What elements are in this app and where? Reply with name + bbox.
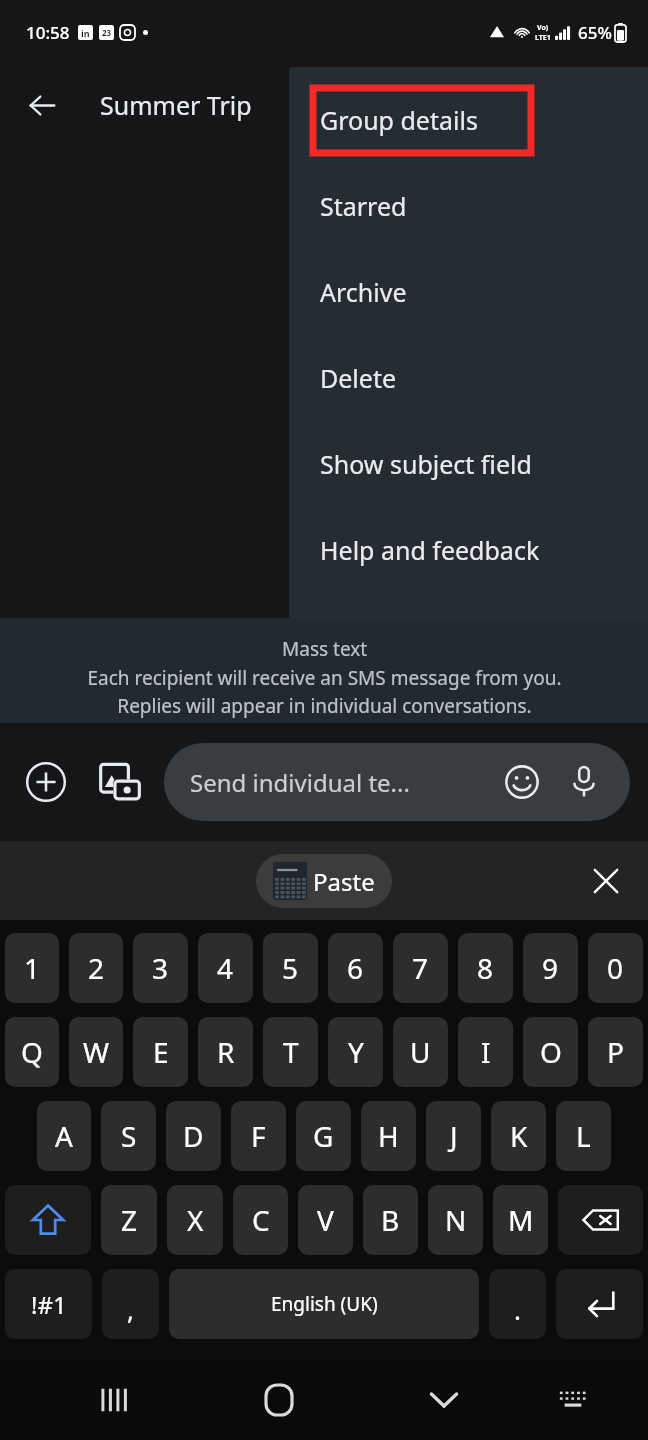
button[interactable]: R bbox=[198, 1017, 253, 1087]
button[interactable]: English (UK) bbox=[169, 1269, 479, 1339]
button[interactable]: Q bbox=[5, 1017, 59, 1087]
button[interactable]: W bbox=[69, 1017, 123, 1087]
button[interactable]: V bbox=[298, 1185, 353, 1255]
staticText: Paste bbox=[313, 865, 375, 898]
staticText: A bbox=[55, 1117, 73, 1155]
button[interactable]: 8 bbox=[458, 933, 513, 1003]
button[interactable]: O bbox=[523, 1017, 578, 1087]
button[interactable]: 1 bbox=[5, 933, 59, 1003]
button[interactable]: 6 bbox=[328, 933, 383, 1003]
staticText: V bbox=[317, 1201, 334, 1239]
staticText: . bbox=[514, 1292, 521, 1327]
staticText: E bbox=[153, 1033, 169, 1071]
button[interactable]: . bbox=[489, 1269, 546, 1339]
button[interactable]: F bbox=[231, 1101, 286, 1171]
staticText: Replies will appear in individual conver… bbox=[117, 693, 532, 719]
staticText: T bbox=[283, 1033, 299, 1071]
button[interactable]: I bbox=[458, 1017, 513, 1087]
button[interactable]: Delete bbox=[289, 335, 648, 421]
staticText: 65% bbox=[578, 21, 612, 44]
staticText: Delete bbox=[320, 361, 397, 395]
button[interactable]: Help and feedback bbox=[289, 507, 648, 593]
staticText: J bbox=[450, 1117, 458, 1155]
staticText: 6 bbox=[347, 949, 364, 987]
button[interactable]: Close suggestion bbox=[578, 853, 634, 909]
button[interactable]: Camera and gallery bbox=[92, 754, 148, 810]
staticText: Group details bbox=[320, 103, 478, 137]
button[interactable]: Archive bbox=[289, 249, 648, 335]
button[interactable]: Hide keyboard bbox=[413, 1369, 475, 1431]
button[interactable]: J bbox=[426, 1101, 481, 1171]
button[interactable]: Emoji bbox=[498, 758, 546, 806]
staticText: !#1 bbox=[31, 1288, 67, 1321]
button[interactable]: Recent apps bbox=[83, 1369, 145, 1431]
button[interactable]: Home bbox=[248, 1369, 310, 1431]
button[interactable]: Shift bbox=[5, 1185, 91, 1255]
staticText: Q bbox=[21, 1033, 43, 1071]
staticText: 7 bbox=[412, 949, 429, 987]
button[interactable]: C bbox=[233, 1185, 288, 1255]
button[interactable]: U bbox=[393, 1017, 448, 1087]
button[interactable]: T bbox=[263, 1017, 318, 1087]
button[interactable]: 7 bbox=[393, 933, 448, 1003]
button[interactable]: Send individual te... bbox=[164, 743, 630, 821]
button[interactable]: Z bbox=[101, 1185, 157, 1255]
staticText: 9 bbox=[542, 949, 559, 987]
staticText: Vo) bbox=[537, 23, 549, 33]
staticText: 5 bbox=[282, 949, 299, 987]
staticText: 3 bbox=[152, 949, 169, 987]
staticText: 23 bbox=[102, 27, 112, 38]
button[interactable]: E bbox=[133, 1017, 188, 1087]
button[interactable]: Add attachment bbox=[18, 754, 74, 810]
button[interactable]: M bbox=[493, 1185, 548, 1255]
staticText: D bbox=[183, 1117, 204, 1155]
button[interactable]: Backspace bbox=[558, 1185, 643, 1255]
staticText: , bbox=[127, 1292, 134, 1327]
button[interactable]: 0 bbox=[588, 933, 643, 1003]
staticText: R bbox=[217, 1033, 235, 1071]
button[interactable]: D bbox=[166, 1101, 221, 1171]
button[interactable]: Enter bbox=[556, 1269, 643, 1339]
button[interactable]: B bbox=[363, 1185, 418, 1255]
staticText: LTE1 bbox=[535, 33, 551, 43]
staticText: 8 bbox=[477, 949, 494, 987]
button[interactable]: !#1 bbox=[5, 1269, 92, 1339]
button[interactable]: 2 bbox=[69, 933, 123, 1003]
button[interactable]: 4 bbox=[198, 933, 253, 1003]
button[interactable]: H bbox=[361, 1101, 416, 1171]
staticText: 2 bbox=[88, 949, 105, 987]
button[interactable]: S bbox=[101, 1101, 156, 1171]
staticText: in bbox=[81, 27, 90, 39]
staticText: L bbox=[576, 1117, 591, 1155]
button[interactable]: 3 bbox=[133, 933, 188, 1003]
button[interactable]: P bbox=[588, 1017, 643, 1087]
button[interactable]: L bbox=[556, 1101, 611, 1171]
button[interactable]: Back bbox=[14, 77, 70, 133]
button[interactable]: Show subject field bbox=[289, 421, 648, 507]
staticText: I bbox=[481, 1033, 491, 1071]
staticText: F bbox=[251, 1117, 266, 1155]
button[interactable]: Group details bbox=[289, 77, 648, 163]
button[interactable]: Y bbox=[328, 1017, 383, 1087]
button[interactable]: Voice input bbox=[560, 758, 608, 806]
staticText: X bbox=[187, 1201, 204, 1239]
staticText: 10:58 bbox=[26, 21, 70, 44]
staticText: P bbox=[607, 1033, 624, 1071]
button[interactable]: , bbox=[102, 1269, 159, 1339]
button[interactable]: 5 bbox=[263, 933, 318, 1003]
button[interactable]: Keyboard settings bbox=[542, 1369, 604, 1431]
button[interactable]: Starred bbox=[289, 163, 648, 249]
staticText: S bbox=[121, 1117, 137, 1155]
button[interactable]: K bbox=[491, 1101, 546, 1171]
button[interactable]: X bbox=[167, 1185, 223, 1255]
staticText: Help and feedback bbox=[320, 533, 540, 567]
staticText: H bbox=[378, 1117, 399, 1155]
staticText: M bbox=[508, 1201, 534, 1239]
button[interactable]: 9 bbox=[523, 933, 578, 1003]
staticText: 1 bbox=[24, 949, 41, 987]
button[interactable]: A bbox=[37, 1101, 91, 1171]
button[interactable]: N bbox=[428, 1185, 483, 1255]
button[interactable]: Paste bbox=[256, 854, 392, 908]
staticText: Mass text bbox=[282, 636, 368, 662]
button[interactable]: G bbox=[296, 1101, 351, 1171]
